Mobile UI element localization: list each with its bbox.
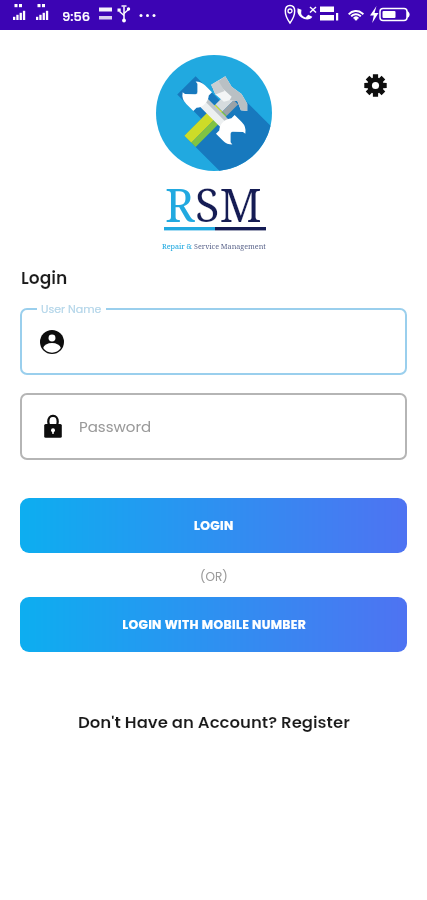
staticText: Repair & bbox=[162, 241, 194, 251]
staticText: Login bbox=[21, 266, 68, 290]
button[interactable]: Settings bbox=[358, 68, 392, 102]
staticText: SM bbox=[195, 174, 262, 235]
staticText: Password bbox=[79, 416, 152, 437]
staticText: 9:56 bbox=[62, 7, 91, 25]
staticText: LOGIN WITH MOBILE NUMBER bbox=[122, 616, 306, 633]
button[interactable]: Password bbox=[20, 393, 407, 460]
staticText: (OR) bbox=[200, 568, 228, 585]
button[interactable]: LOGIN bbox=[20, 498, 407, 553]
button[interactable] bbox=[20, 308, 407, 375]
staticText: User Name bbox=[41, 301, 102, 316]
button[interactable]: LOGIN WITH MOBILE NUMBER bbox=[20, 597, 407, 652]
staticText: LOGIN bbox=[194, 517, 234, 534]
button[interactable]: Don't Have an Account? Register bbox=[78, 711, 350, 734]
staticText: Service Management bbox=[194, 241, 266, 251]
staticText: R bbox=[165, 174, 195, 235]
